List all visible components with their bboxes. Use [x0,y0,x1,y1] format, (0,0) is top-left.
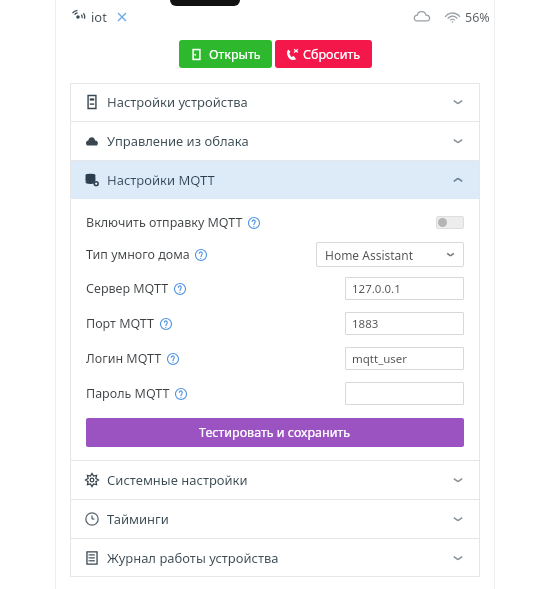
button[interactable]: 127.0.0.1 [345,277,464,300]
staticText: Пароль MQTT [86,385,170,402]
button[interactable]: Help [159,317,172,330]
staticText: Home Assistant [325,247,414,263]
button[interactable]: Настройки MQTT [70,161,480,199]
button[interactable]: Help [247,216,260,229]
button[interactable]: 1883 [345,312,464,335]
button[interactable]: Help [174,387,187,400]
button[interactable]: Тайминги [70,500,480,538]
button[interactable]: Открыть [179,40,272,68]
button[interactable]: Настройки устройства [70,83,480,121]
button[interactable]: Help [173,282,186,295]
staticText: Сбросить [303,46,361,63]
staticText: Порт MQTT [86,315,155,332]
button[interactable]: Журнал работы устройства [70,539,480,577]
staticText: iot [91,8,107,26]
staticText: Тестировать и сохранить [199,424,351,441]
staticText: Тип умного дома [86,246,190,263]
button[interactable]: Help [194,248,207,261]
button[interactable]: Help [166,352,179,365]
button[interactable]: Управление из облака [70,122,480,160]
staticText: 1883 [352,316,379,332]
button[interactable]: Home Assistant [316,242,464,267]
staticText: Логин MQTT [86,350,162,367]
staticText: 127.0.0.1 [352,281,401,297]
staticText: Системные настройки [107,471,248,489]
staticText: Тайминги [107,510,169,528]
button[interactable]: Сбросить [275,40,372,68]
staticText: Журнал работы устройства [107,549,279,567]
button[interactable]: mqtt_user [345,347,464,370]
button[interactable]: Системные настройки [70,461,480,499]
button[interactable]: Enable MQTT toggle [436,216,464,229]
staticText: Управление из облака [107,132,249,150]
staticText: Открыть [209,46,261,63]
staticText: Настройки MQTT [107,171,215,189]
button[interactable] [345,382,464,405]
button[interactable]: Тестировать и сохранить [86,418,464,447]
staticText: Настройки устройства [107,93,248,111]
staticText: Включить отправку MQTT [86,214,243,231]
button[interactable]: Close [115,10,129,24]
staticText: 56% [465,9,490,26]
staticText: Сервер MQTT [86,280,169,297]
staticText: mqtt_user [352,351,408,367]
